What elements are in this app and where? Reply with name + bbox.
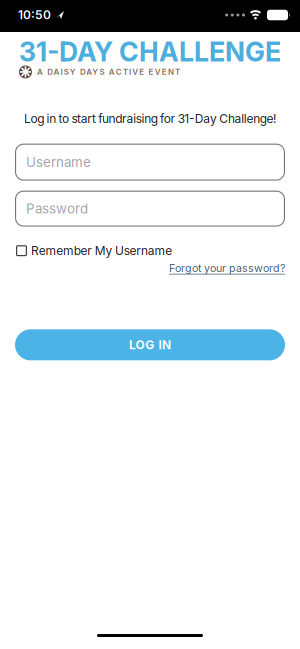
staticText: LOG IN — [129, 338, 171, 352]
staticText: 10:50 — [18, 8, 51, 22]
staticText: A DAISY DAYS ACTIVE EVENT — [37, 67, 180, 77]
staticText: 31-DAY CHALLENGE — [19, 36, 281, 67]
button[interactable]: LOG IN — [15, 329, 285, 360]
button[interactable]: Password — [15, 191, 285, 227]
staticText: Password — [26, 201, 88, 216]
staticText: Remember My Username — [31, 244, 172, 258]
staticText: Log in to start fundraising for 31-Day C… — [24, 111, 276, 126]
staticText: Forgot your password? — [169, 262, 285, 274]
staticText: Username — [26, 154, 91, 170]
button[interactable]: Forgot your password? — [169, 262, 285, 274]
button[interactable]: Remember My Username — [16, 244, 172, 258]
button[interactable]: Username — [15, 144, 285, 181]
